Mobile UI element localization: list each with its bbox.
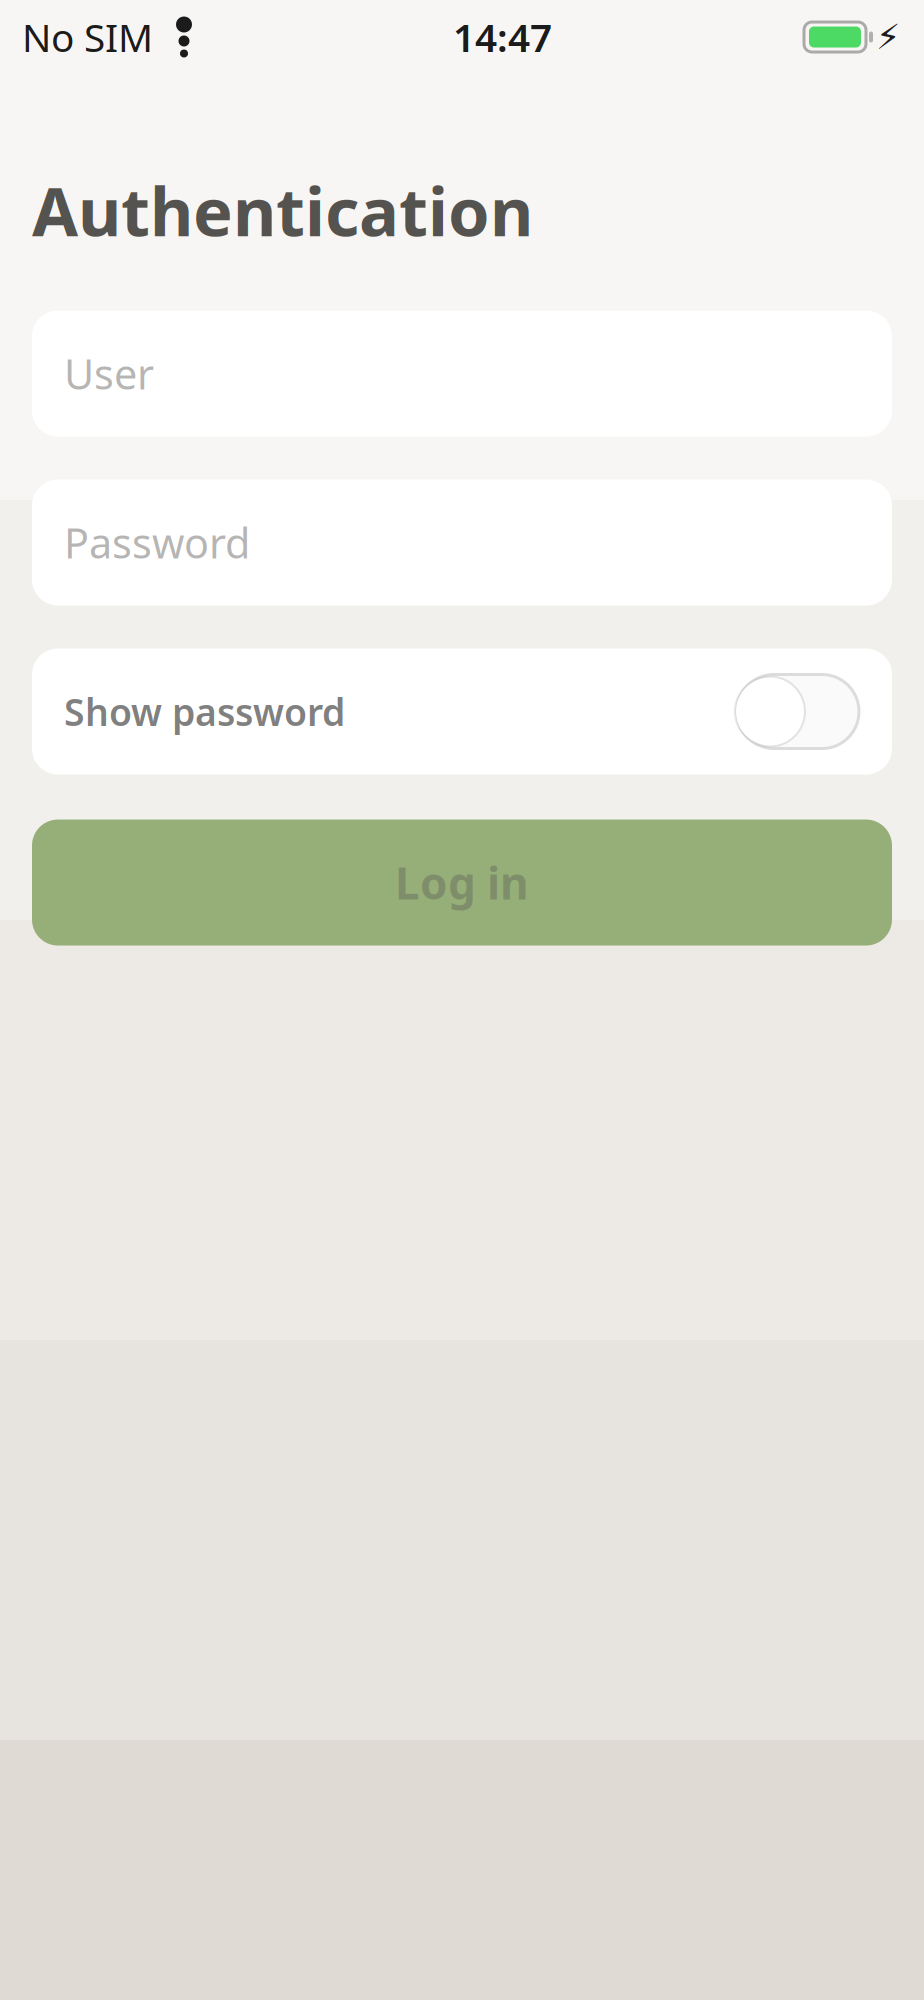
staticText: Password [64, 515, 250, 570]
staticText: ⚡︎ [876, 17, 900, 57]
staticText: Authentication [32, 166, 533, 254]
staticText: Log in [395, 853, 529, 912]
staticText: No SIM [22, 11, 153, 63]
button[interactable]: Show password [0, 648, 924, 774]
staticText: 14:47 [453, 11, 552, 63]
staticText: User [64, 346, 154, 401]
staticText: Show password [64, 687, 345, 736]
button[interactable]: Log in [0, 819, 924, 945]
